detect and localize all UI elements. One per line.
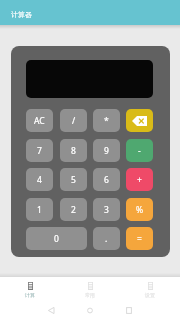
button[interactable]: 1	[26, 198, 53, 221]
staticText: AC	[34, 115, 45, 127]
staticText: =	[137, 233, 142, 245]
staticText: 2	[71, 204, 76, 216]
button[interactable]: *	[93, 109, 120, 132]
button[interactable]: Backspace	[126, 109, 153, 132]
button[interactable]: /	[60, 109, 87, 132]
staticText: 计算器	[11, 10, 32, 19]
button[interactable]: Back	[42, 301, 60, 319]
staticText: 0	[54, 233, 59, 245]
button[interactable]: 0	[26, 227, 87, 250]
button[interactable]: 设置	[120, 277, 180, 301]
button[interactable]: 8	[60, 139, 87, 162]
button[interactable]: 7	[26, 139, 53, 162]
staticText: 1	[37, 204, 42, 216]
button[interactable]: 2	[60, 198, 87, 221]
staticText: 计算	[25, 292, 35, 298]
button[interactable]: 3	[93, 198, 120, 221]
staticText: .	[105, 233, 108, 245]
button[interactable]: AC	[26, 109, 53, 132]
button[interactable]: %	[126, 198, 153, 221]
button[interactable]: +	[126, 168, 153, 191]
button[interactable]: =	[126, 227, 153, 250]
staticText: 设置	[145, 292, 155, 298]
button[interactable]: 4	[26, 168, 53, 191]
staticText: 3	[104, 204, 109, 216]
button[interactable]: 9	[93, 139, 120, 162]
button[interactable]: -	[126, 139, 153, 162]
staticText: 8	[71, 145, 76, 157]
button[interactable]: Recent apps	[120, 301, 138, 319]
staticText: 5	[71, 174, 76, 186]
staticText: 7	[37, 145, 42, 157]
button[interactable]: 常用	[60, 277, 120, 301]
staticText: -	[138, 145, 141, 157]
staticText: 常用	[85, 292, 95, 298]
button[interactable]: 6	[93, 168, 120, 191]
staticText: /	[72, 115, 76, 127]
button[interactable]: .	[93, 227, 120, 250]
button[interactable]: Home	[81, 301, 99, 319]
staticText: 4	[37, 174, 42, 186]
staticText: 9	[104, 145, 109, 157]
staticText: %	[136, 204, 144, 216]
staticText: 6	[104, 174, 109, 186]
staticText: *	[104, 115, 109, 127]
button[interactable]: 5	[60, 168, 87, 191]
button[interactable]: 计算	[0, 277, 60, 301]
staticText: +	[137, 174, 142, 186]
